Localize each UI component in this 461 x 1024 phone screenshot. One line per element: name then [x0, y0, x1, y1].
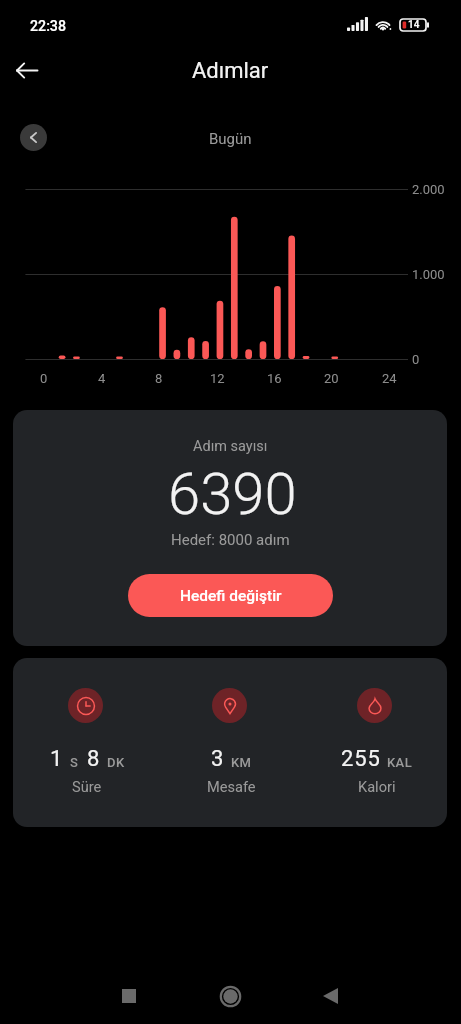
- staticText: Kalori: [358, 778, 396, 795]
- staticText: 6390: [168, 460, 297, 528]
- button[interactable]: 255: [302, 658, 447, 693]
- staticText: 14: [408, 19, 420, 31]
- staticText: 22:38: [30, 18, 66, 35]
- staticText: Adım sayısı: [193, 438, 268, 455]
- staticText: 12: [210, 371, 225, 386]
- staticText: 255: [341, 746, 381, 772]
- staticText: 20: [324, 371, 339, 386]
- staticText: Adımlar: [192, 58, 269, 84]
- staticText: 8: [155, 371, 163, 386]
- button[interactable]: 3: [157, 658, 302, 693]
- staticText: DK: [107, 755, 125, 770]
- staticText: KAL: [387, 755, 413, 770]
- staticText: 0: [40, 371, 48, 386]
- staticText: Hedefi değiştir: [180, 587, 282, 605]
- button[interactable]: Back: [7, 50, 47, 90]
- staticText: 1.000: [412, 267, 445, 282]
- button[interactable]: Recent apps: [99, 968, 159, 1024]
- button[interactable]: Back: [300, 968, 360, 1024]
- staticText: Bugün: [209, 130, 252, 148]
- staticText: Mesafe: [207, 778, 256, 795]
- staticText: S: [70, 755, 79, 770]
- staticText: Hedef: 8000 adım: [171, 531, 290, 549]
- staticText: 2.000: [412, 182, 445, 197]
- staticText: 4: [98, 371, 106, 386]
- staticText: 8: [87, 746, 101, 772]
- button[interactable]: Hedefi değiştir: [128, 574, 333, 617]
- button[interactable]: 1: [13, 658, 157, 693]
- staticText: KM: [231, 755, 252, 770]
- staticText: 16: [267, 371, 282, 386]
- button[interactable]: Home: [200, 968, 260, 1024]
- staticText: 1: [50, 746, 64, 772]
- button[interactable]: Previous day: [20, 124, 47, 151]
- staticText: 24: [382, 371, 397, 386]
- staticText: 0: [412, 352, 420, 367]
- staticText: Süre: [72, 778, 102, 795]
- staticText: 3: [211, 746, 225, 772]
